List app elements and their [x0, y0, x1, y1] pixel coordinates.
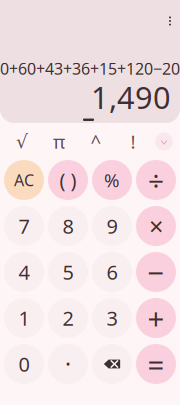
button[interactable]: AC — [4, 160, 44, 200]
button[interactable]: 4 — [4, 252, 44, 292]
staticText: 5 — [62, 259, 73, 285]
staticText: 140+60+43+36+15+120−20 — [0, 58, 180, 79]
staticText: ^ — [90, 129, 101, 154]
staticText: 7 — [18, 213, 29, 239]
staticText: π — [53, 129, 65, 154]
staticText: ! — [130, 129, 135, 154]
button[interactable]: 7 — [4, 206, 44, 246]
button[interactable]: = — [136, 344, 176, 384]
staticText: AC — [14, 169, 34, 191]
staticText: % — [104, 168, 120, 192]
staticText: √ — [16, 131, 28, 152]
button[interactable]: 1 — [4, 298, 44, 338]
button[interactable]: × — [136, 206, 176, 246]
button[interactable]: More options — [160, 10, 180, 32]
button[interactable]: 6 — [92, 252, 132, 292]
button[interactable]: π — [44, 124, 74, 158]
button[interactable]: ! — [118, 124, 148, 158]
staticText: + — [147, 298, 164, 337]
button[interactable]: − — [136, 252, 176, 292]
button[interactable]: 3 — [92, 298, 132, 338]
staticText: 2 — [62, 305, 73, 331]
button[interactable]: ÷ — [136, 160, 176, 200]
button[interactable]: % — [92, 160, 132, 200]
staticText: · — [65, 349, 71, 379]
button[interactable]: + — [136, 298, 176, 338]
staticText: 4 — [18, 259, 29, 285]
button[interactable]: Delete — [92, 344, 132, 384]
staticText: 6 — [106, 259, 117, 285]
button[interactable]: ^ — [81, 124, 111, 158]
staticText: = — [147, 344, 164, 383]
button[interactable]: 5 — [48, 252, 88, 292]
button[interactable]: 2 — [48, 298, 88, 338]
staticText: 3 — [106, 305, 117, 331]
button[interactable]: 8 — [48, 206, 88, 246]
staticText: ÷ — [148, 161, 164, 199]
staticText: 1,490 — [91, 77, 171, 117]
staticText: × — [149, 209, 163, 243]
staticText: 0 — [18, 351, 29, 377]
button[interactable]: Show more functions — [155, 132, 173, 150]
button[interactable]: 0 — [4, 344, 44, 384]
staticText: ( ) — [59, 167, 76, 193]
staticText: 8 — [62, 213, 73, 239]
staticText: − — [147, 252, 164, 291]
staticText: 9 — [106, 213, 117, 239]
staticText: 1 — [18, 305, 29, 331]
button[interactable]: · — [48, 344, 88, 384]
button[interactable]: 9 — [92, 206, 132, 246]
button[interactable]: ( ) — [48, 160, 88, 200]
button[interactable]: √ — [7, 124, 37, 158]
